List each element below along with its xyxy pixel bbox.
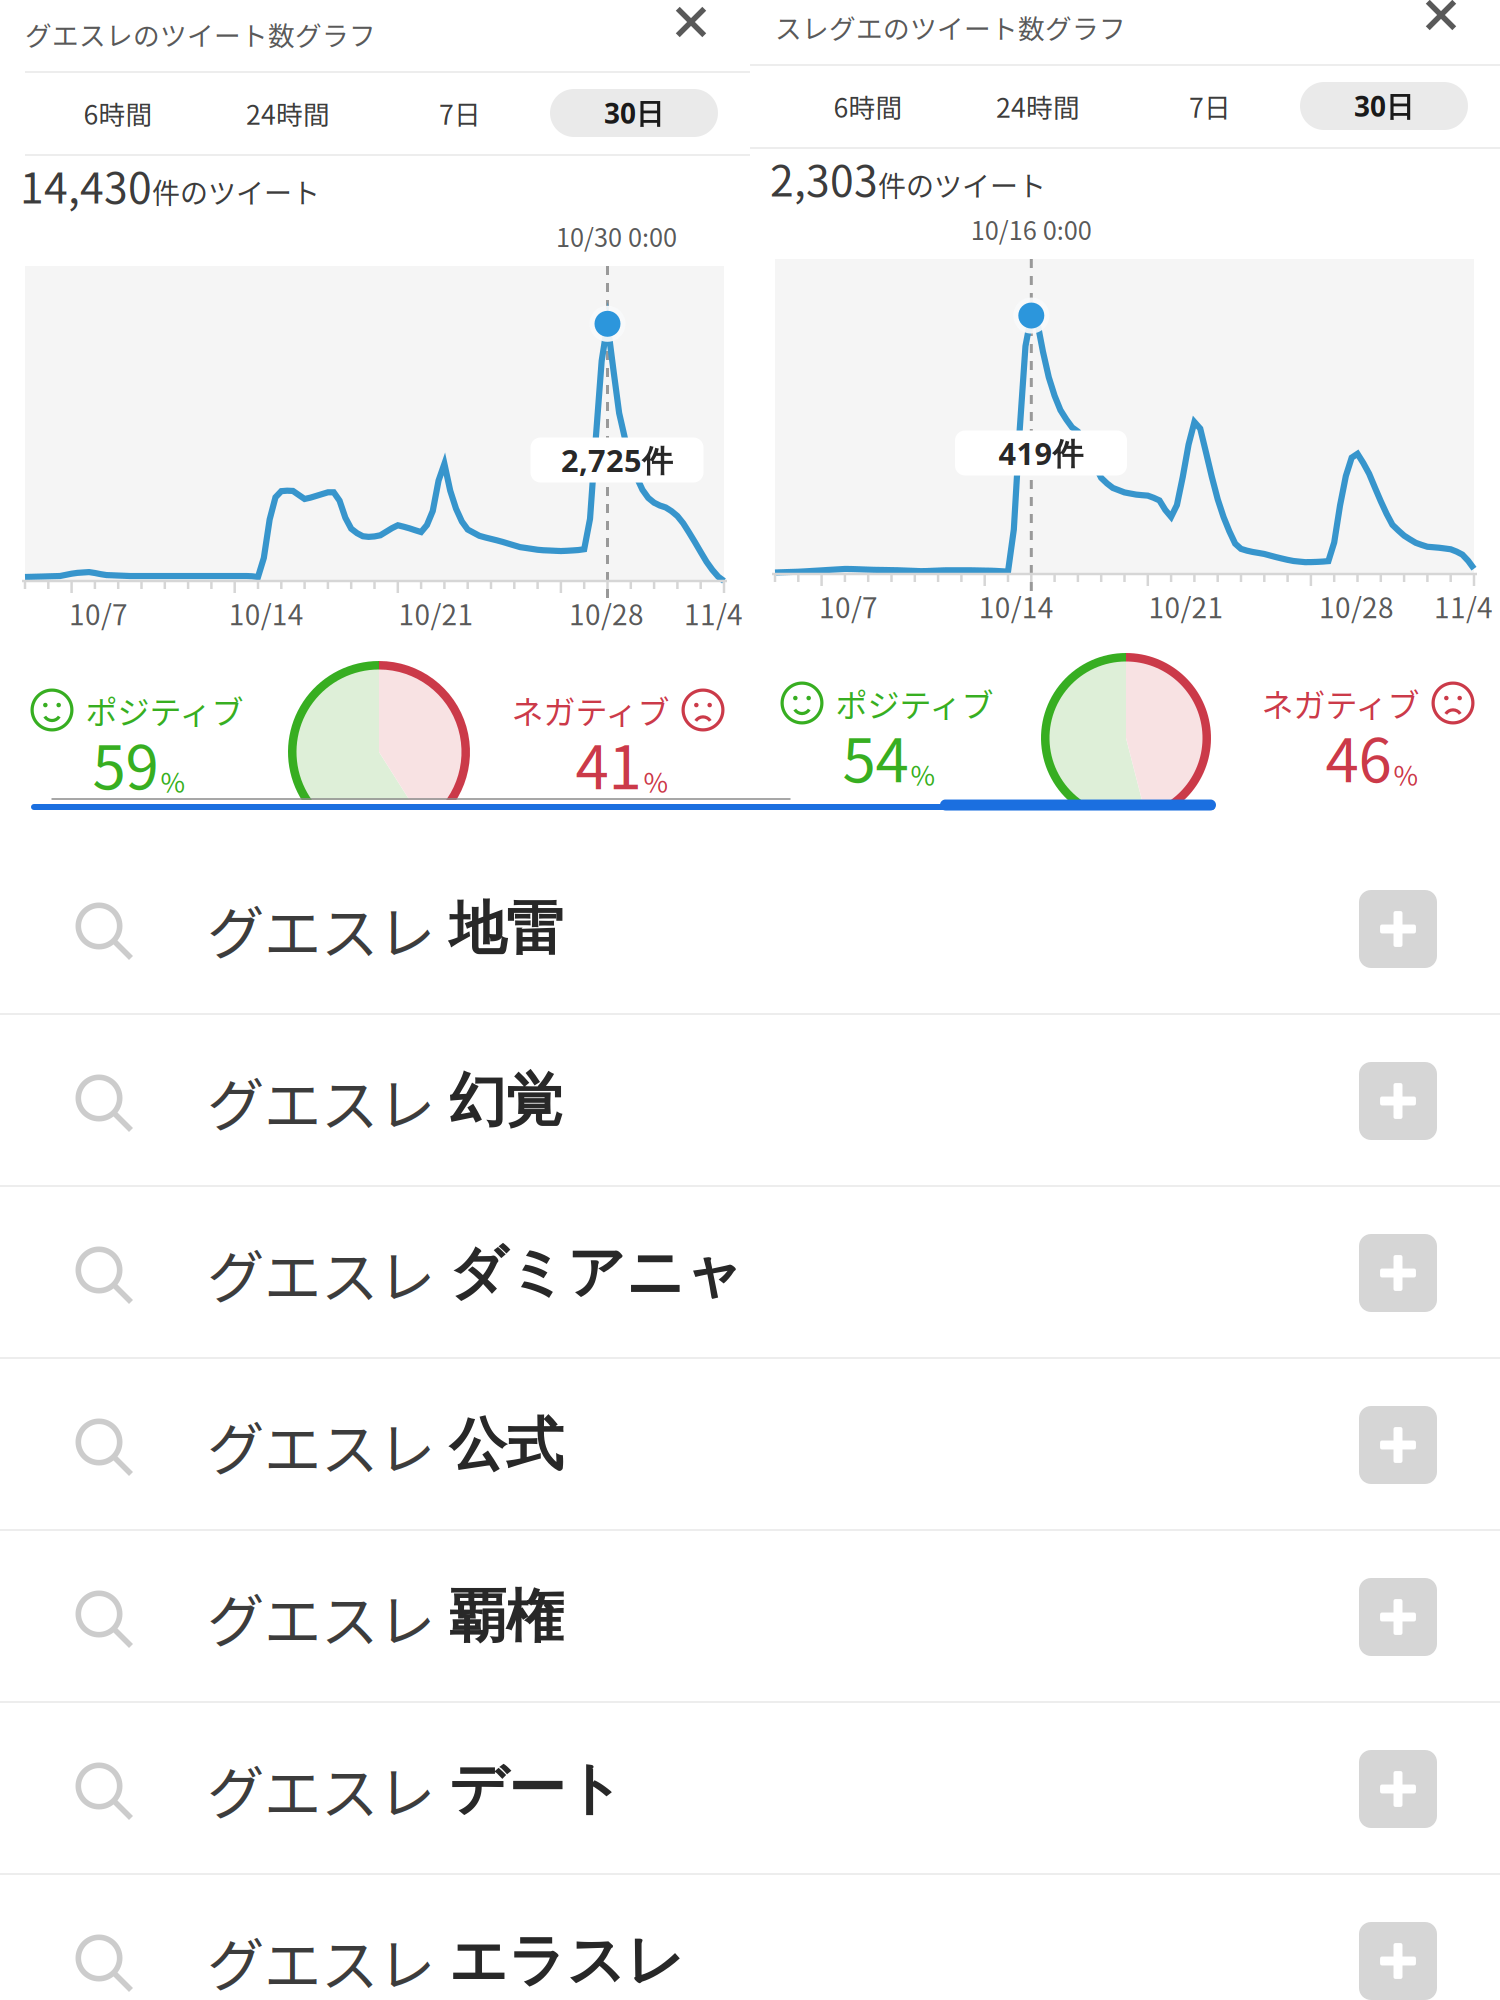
staticText: 10/14 [229,593,304,633]
staticText: 41 [575,720,641,806]
staticText: 2,725件 [561,439,673,481]
button[interactable]: グエスレ [0,843,1320,1015]
staticText: ポジティブ [85,687,243,733]
button[interactable]: 30日 [550,89,718,137]
staticText: ダミアニャ [449,1237,744,1309]
staticText: 419件 [998,432,1083,474]
staticText: 59 [92,720,158,806]
button[interactable]: スレグエのツイート数グラフ [775,0,1375,63]
button[interactable]: グエスレ [0,1187,1320,1359]
staticText: 10/21 [1148,586,1223,626]
staticText: 30日 [1354,87,1414,125]
staticText: 2,303 [770,147,878,209]
staticText: % [643,762,668,800]
staticText: 10/7 [819,586,878,626]
button[interactable]: グエスレ [0,1875,1320,2000]
staticText: 46 [1325,713,1391,799]
staticText: 10/28 [569,593,644,633]
button[interactable]: Add グエスレ幻覚 [1333,1015,1463,1187]
staticText: 件のツイート [878,164,1046,205]
button[interactable]: グエスレ [0,1703,1320,1875]
button[interactable]: 30日 [1300,82,1468,130]
staticText: 24時間 [246,94,330,132]
staticText: デート [449,1753,624,1825]
staticText: 11/4 [684,593,743,633]
staticText: グエスレ [207,1747,435,1830]
button[interactable]: グエスレのツイート数グラフ [25,0,625,70]
staticText: 10/30 0:00 [556,218,677,254]
button[interactable]: Add グエスレエラスレ [1333,1875,1463,2000]
button[interactable]: Add グエスレ地雷 [1333,843,1463,1015]
staticText: 6時間 [833,87,902,125]
staticText: グエスレ [207,1231,435,1314]
staticText: グエスレ [207,1403,435,1486]
button[interactable]: 6時間 [788,72,948,140]
staticText: 10/14 [979,586,1054,626]
staticText: 7日 [439,94,481,132]
staticText: スレグエのツイート数グラフ [775,8,1126,46]
staticText: ネガティブ [511,687,669,733]
staticText: 覇権 [449,1581,563,1653]
staticText: % [160,762,185,800]
button[interactable]: グエスレ [0,1359,1320,1531]
staticText: グエスレ [207,1919,435,2000]
button[interactable]: 7日 [395,79,525,147]
staticText: ネガティブ [1261,680,1419,726]
button[interactable]: Add グエスレデート [1333,1703,1463,1875]
button[interactable]: グエスレ [0,1531,1320,1703]
staticText: 件のツイート [152,171,320,212]
staticText: 幻覚 [449,1065,563,1137]
staticText: 10/28 [1319,586,1394,626]
staticText: 10/21 [398,593,473,633]
staticText: グエスレ [207,887,435,970]
staticText: 地雷 [449,893,563,965]
staticText: ポジティブ [835,680,993,726]
staticText: グエスレのツイート数グラフ [25,15,376,53]
staticText: 10/16 0:00 [971,211,1092,247]
button[interactable]: 24時間 [948,72,1128,140]
staticText: 10/7 [69,593,128,633]
staticText: 30日 [604,94,664,132]
button[interactable]: 7日 [1145,72,1275,140]
button[interactable]: グエスレ [0,1015,1320,1187]
button[interactable]: Add グエスレ公式 [1333,1359,1463,1531]
button[interactable]: 24時間 [198,79,378,147]
staticText: 54 [842,713,908,799]
staticText: % [1393,755,1418,793]
staticText: 14,430 [20,154,152,216]
staticText: 24時間 [996,87,1080,125]
button[interactable]: 6時間 [38,79,198,147]
staticText: 11/4 [1434,586,1493,626]
staticText: 公式 [449,1409,563,1481]
button[interactable]: Close [1395,0,1487,47]
button[interactable]: Add グエスレダミアニャ [1333,1187,1463,1359]
staticText: 7日 [1189,87,1231,125]
staticText: 6時間 [83,94,152,132]
staticText: % [910,755,935,793]
staticText: エラスレ [449,1925,685,1997]
staticText: グエスレ [207,1575,435,1658]
button[interactable]: Close [645,0,737,54]
button[interactable]: Add グエスレ覇権 [1333,1531,1463,1703]
staticText: グエスレ [207,1059,435,1142]
